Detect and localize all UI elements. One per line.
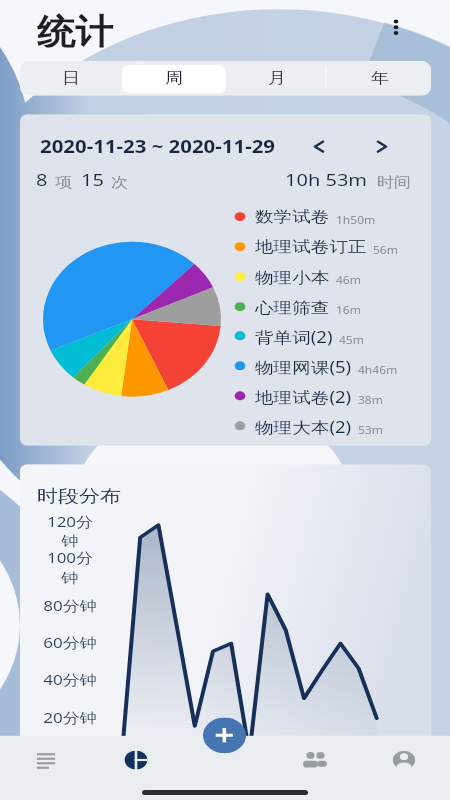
staticText: 数学试卷 (255, 207, 330, 227)
button[interactable]: Next week (364, 132, 400, 162)
staticText: 1h50m (336, 213, 376, 227)
button[interactable]: More options (378, 8, 414, 47)
staticText: 120分钟 (40, 512, 100, 550)
staticText: 次 (111, 173, 128, 191)
staticText: 56m (373, 243, 398, 257)
staticText: 20分钟 (43, 707, 97, 727)
staticText: 地理试卷(2) (255, 386, 352, 407)
button[interactable]: 地理试卷订正 (232, 235, 412, 258)
staticText: 2020-11-23 ~ 2020-11-29 (40, 135, 275, 158)
staticText: 80分钟 (43, 596, 97, 615)
button[interactable]: 周 (134, 61, 214, 96)
button[interactable]: Previous week (301, 132, 337, 162)
staticText: 时间 (377, 173, 411, 191)
staticText: 统计 (37, 11, 113, 47)
staticText: 10h 53m (285, 168, 368, 191)
staticText: 15 (81, 168, 104, 191)
staticText: 物理小本 (255, 267, 330, 287)
staticText: 背单词(2) (255, 326, 333, 347)
staticText: 46m (336, 273, 361, 287)
staticText: 月 (268, 69, 286, 88)
button[interactable]: Statistics (112, 740, 160, 780)
staticText: 物理网课(5) (255, 356, 352, 377)
staticText: 38m (358, 393, 383, 407)
button[interactable]: 心理筛查 (232, 295, 412, 318)
button[interactable]: 年 (340, 61, 420, 96)
staticText: 45m (339, 333, 364, 347)
button[interactable]: 月 (237, 61, 317, 96)
button[interactable]: 物理小本 (232, 265, 412, 288)
staticText: 周 (165, 69, 183, 88)
button[interactable]: 地理试卷(2) (232, 384, 412, 407)
button[interactable]: 日 (31, 61, 111, 96)
staticText: 4h46m (358, 363, 398, 377)
button[interactable]: List (22, 740, 70, 780)
staticText: 物理大本(2) (255, 416, 352, 437)
staticText: 时段分布 (37, 485, 121, 507)
staticText: 40分钟 (43, 670, 97, 689)
button[interactable]: Add (203, 717, 246, 753)
button[interactable]: 物理网课(5) (232, 354, 412, 377)
staticText: 100分钟 (40, 548, 100, 587)
staticText: 项 (55, 173, 72, 191)
button[interactable]: Profile (380, 740, 428, 780)
staticText: 年 (371, 69, 389, 88)
staticText: 60分钟 (43, 633, 97, 652)
button[interactable]: 数学试卷 (232, 205, 412, 228)
button[interactable]: Friends (291, 740, 339, 780)
staticText: 53m (358, 423, 383, 437)
staticText: 日 (62, 69, 80, 88)
staticText: 心理筛查 (255, 297, 330, 317)
staticText: 16m (336, 303, 361, 317)
staticText: 地理试卷订正 (255, 237, 367, 257)
button[interactable]: 物理大本(2) (232, 414, 412, 437)
staticText: 8 (36, 168, 48, 191)
button[interactable]: 背单词(2) (232, 324, 412, 347)
